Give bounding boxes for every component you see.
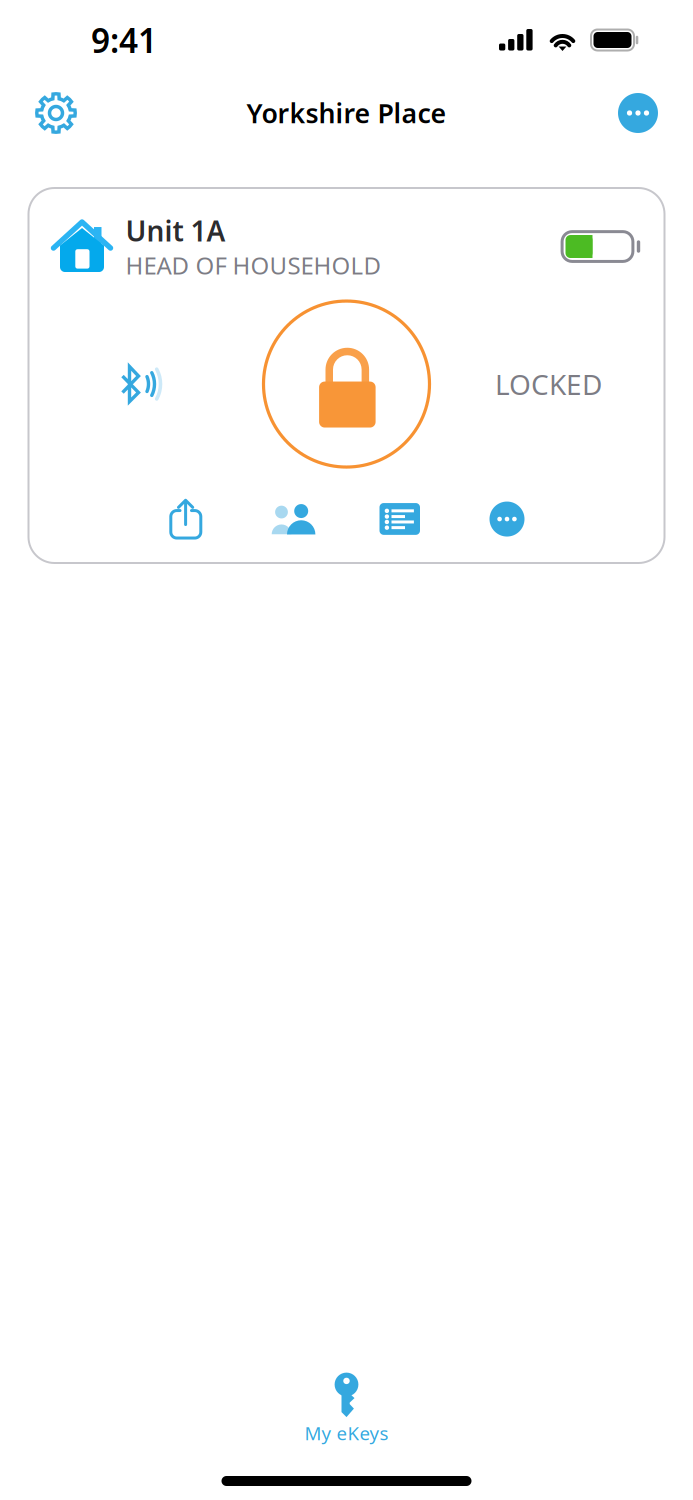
button[interactable]: Share: [132, 490, 239, 548]
button[interactable]: Settings: [27, 84, 85, 142]
staticText: My eKeys: [304, 1421, 388, 1445]
button[interactable]: Guests: [239, 490, 346, 548]
button[interactable]: More: [610, 85, 666, 141]
staticText: Yorkshire Place: [246, 95, 446, 131]
staticText: Unit 1A: [125, 212, 225, 249]
staticText: LOCKED: [495, 365, 602, 403]
staticText: 9:41: [91, 18, 157, 62]
staticText: HEAD OF HOUSEHOLD: [125, 249, 381, 281]
button[interactable]: Activity: [346, 490, 453, 548]
button[interactable]: More options: [453, 490, 560, 548]
button[interactable]: My eKeys: [256, 1373, 436, 1445]
button[interactable]: Lock, currently locked: [260, 298, 432, 470]
